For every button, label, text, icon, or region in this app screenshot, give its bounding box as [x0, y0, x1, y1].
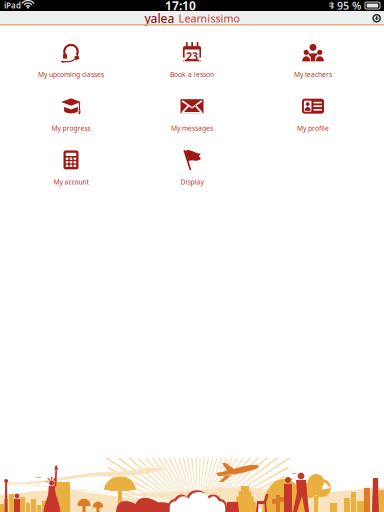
- staticText: My teachers: [294, 70, 332, 79]
- staticText: 23: [186, 49, 198, 63]
- button[interactable]: Display: [131, 148, 252, 202]
- staticText: My upcoming classes: [38, 70, 104, 79]
- staticText: iPad: [4, 0, 21, 11]
- staticText: Display: [180, 177, 203, 186]
- button[interactable]: 23: [131, 41, 252, 95]
- button[interactable]: Log out: [370, 12, 383, 24]
- button[interactable]: My profile: [252, 95, 373, 148]
- staticText: My progress: [51, 124, 90, 133]
- button[interactable]: My upcoming classes: [10, 41, 131, 95]
- button[interactable]: My account: [10, 148, 131, 202]
- staticText: Learnissimo: [178, 11, 239, 25]
- staticText: 95 %: [337, 0, 361, 13]
- staticText: My profile: [297, 124, 329, 133]
- staticText: 17:10: [165, 0, 196, 13]
- staticText: Book a lesson: [170, 70, 214, 79]
- staticText: My messages: [171, 124, 213, 133]
- button[interactable]: My messages: [131, 95, 252, 148]
- button[interactable]: My progress: [10, 95, 131, 148]
- staticText: My account: [53, 177, 88, 186]
- button[interactable]: My teachers: [252, 41, 373, 95]
- staticText: yalea: [144, 10, 174, 26]
